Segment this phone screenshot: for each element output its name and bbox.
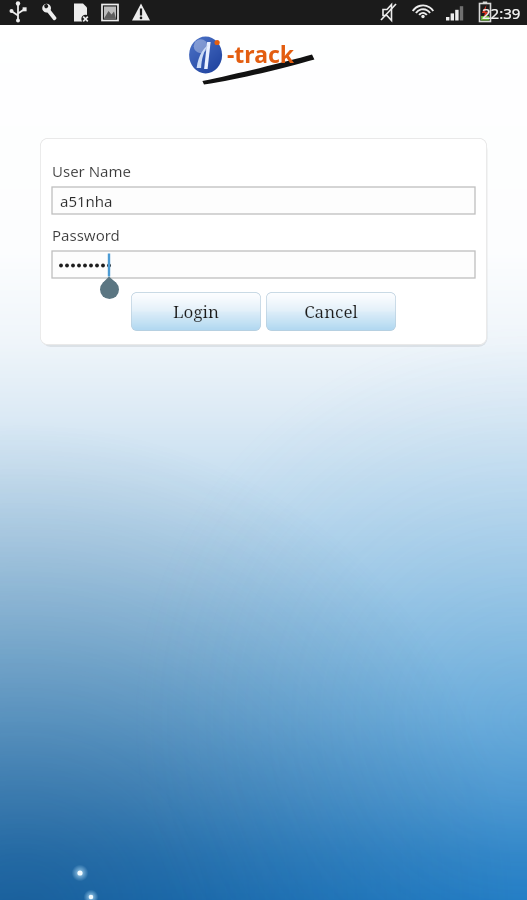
staticText: a51nha xyxy=(60,191,113,211)
staticText: 22:39 xyxy=(482,3,521,23)
button[interactable]: Login xyxy=(131,292,261,331)
staticText: User Name xyxy=(52,161,132,181)
staticText: Password xyxy=(52,225,120,245)
button[interactable]: Text cursor handle xyxy=(52,251,475,278)
button[interactable]: a51nha xyxy=(52,187,475,214)
staticText: Cancel xyxy=(304,300,358,323)
other: Text cursor handle xyxy=(98,275,122,301)
staticText: Login xyxy=(173,300,219,323)
button[interactable]: Cancel xyxy=(266,292,396,331)
staticText: -track xyxy=(227,38,295,69)
